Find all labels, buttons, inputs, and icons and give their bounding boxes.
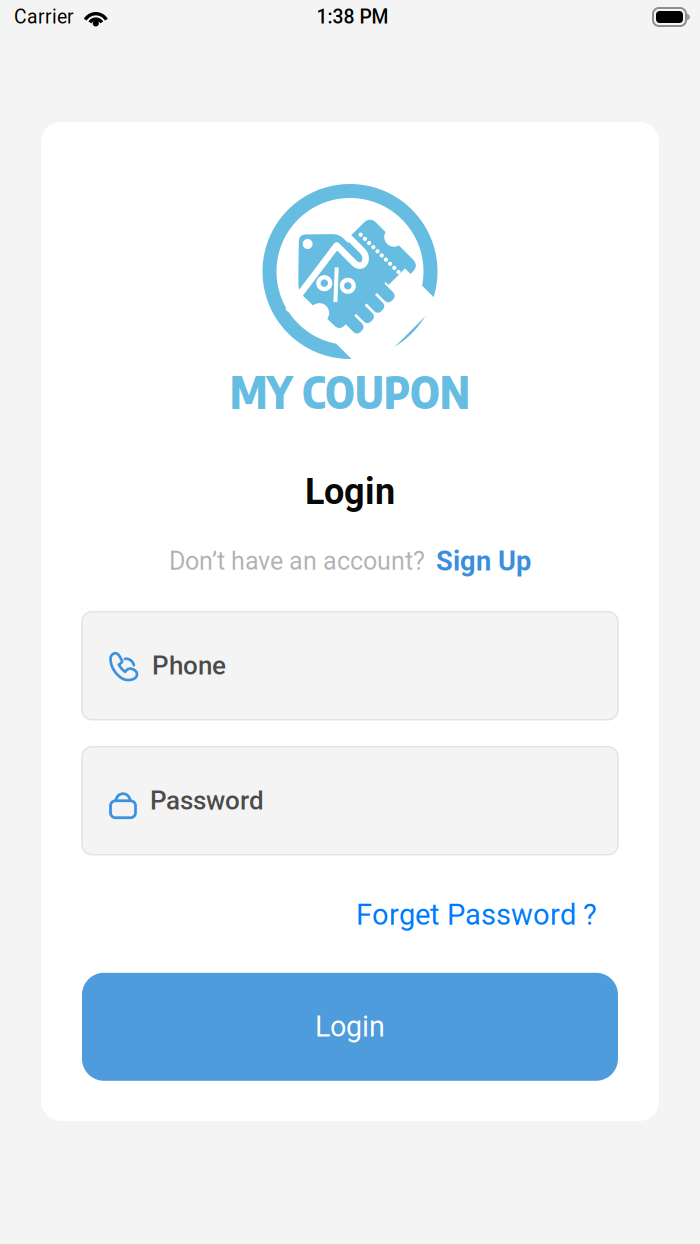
staticText: Phone	[152, 650, 226, 681]
button[interactable]: Sign Up	[436, 545, 531, 577]
staticText: Sign Up	[436, 545, 531, 577]
staticText: Carrier	[14, 6, 74, 28]
staticText: Login	[305, 471, 395, 513]
staticText: Forget Password ?	[356, 898, 597, 932]
button[interactable]: Phone	[82, 612, 618, 720]
staticText: 1:38 PM	[316, 6, 388, 28]
staticText: Don’t have an account?	[169, 547, 425, 576]
staticText: Password	[150, 785, 264, 816]
button[interactable]: Login	[82, 973, 618, 1081]
button[interactable]: Forget Password ?	[356, 898, 618, 932]
staticText: Login	[315, 1010, 385, 1044]
staticText: MY COUPON	[230, 364, 470, 419]
button[interactable]: Password	[82, 747, 618, 855]
